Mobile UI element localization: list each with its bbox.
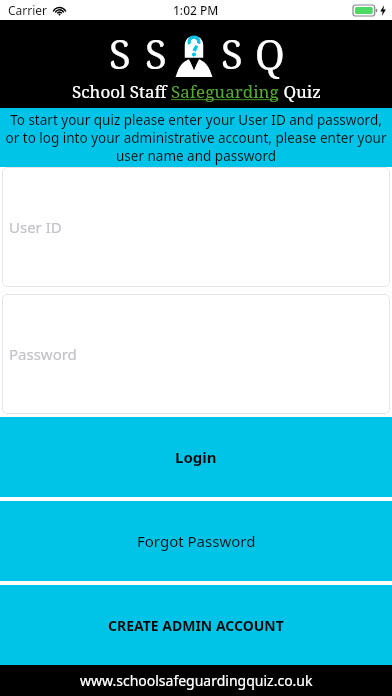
staticText: Login <box>175 447 217 467</box>
staticText: S <box>109 26 131 80</box>
staticText: Carrier <box>8 2 48 18</box>
button[interactable]: Login <box>0 417 392 497</box>
staticText: CREATE ADMIN ACCOUNT <box>108 616 284 635</box>
staticText: www.schoolsafeguardingquiz.co.uk <box>80 671 313 690</box>
staticText: S <box>221 26 243 80</box>
button[interactable]: Forgot Password <box>0 501 392 581</box>
button[interactable]: CREATE ADMIN ACCOUNT <box>0 585 392 665</box>
button[interactable]: Password <box>2 294 390 414</box>
staticText: Q <box>255 26 285 80</box>
staticText: Forgot Password <box>137 531 256 551</box>
staticText: School Staff <box>72 80 171 103</box>
staticText: 1:02 PM <box>173 2 219 18</box>
staticText: To start your quiz please enter your Use… <box>3 111 389 165</box>
other: Safeguarding logo <box>173 29 215 77</box>
staticText: Password <box>9 344 77 364</box>
staticText: Quiz <box>279 80 321 103</box>
other: Wi-Fi <box>53 5 66 15</box>
button[interactable]: www.schoolsafeguardingquiz.co.uk <box>0 665 392 696</box>
staticText: S <box>145 26 167 80</box>
staticText: Safeguarding <box>171 80 279 103</box>
button[interactable]: User ID <box>2 167 390 287</box>
staticText: User ID <box>9 217 62 237</box>
other: Battery <box>353 5 378 16</box>
